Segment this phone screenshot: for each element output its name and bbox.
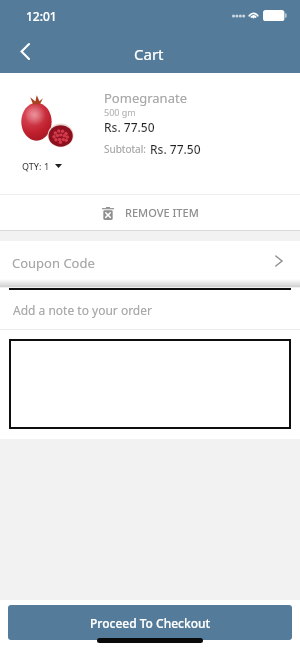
staticText: Pomegranate (104, 89, 187, 107)
button[interactable]: Coupon Code (0, 241, 300, 287)
button[interactable]: Proceed To Checkout (8, 605, 292, 640)
staticText: Cart (134, 44, 164, 64)
button[interactable]: QTY: 1 (22, 160, 62, 172)
staticText: Proceed To Checkout (90, 615, 211, 631)
staticText: 12:01 (26, 8, 57, 24)
staticText: Add a note to your order (13, 302, 152, 318)
button[interactable]: Back (4, 30, 46, 72)
button[interactable] (9, 339, 291, 429)
staticText: Coupon Code (12, 254, 95, 272)
staticText: Subtotal: (104, 142, 146, 156)
button[interactable]: REMOVE ITEM (0, 195, 300, 230)
staticText: Rs. 77.50 (104, 119, 155, 135)
staticText: 500 gm (104, 106, 136, 118)
staticText: QTY: 1 (22, 160, 50, 172)
staticText: Rs. 77.50 (150, 141, 201, 157)
staticText: REMOVE ITEM (125, 205, 199, 220)
